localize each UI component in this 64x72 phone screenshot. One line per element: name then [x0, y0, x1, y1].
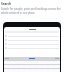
button[interactable]: [4, 34, 60, 38]
button[interactable]: [4, 38, 60, 42]
staticText: Search: [1, 2, 12, 6]
button[interactable]: [4, 42, 60, 46]
staticText: Search for people, posts and hashtags ac…: [1, 7, 62, 14]
button[interactable]: [4, 46, 60, 50]
